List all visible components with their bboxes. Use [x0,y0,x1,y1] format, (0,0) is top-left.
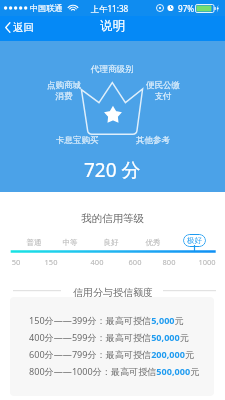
staticText: 150 [31,257,71,267]
staticText: 优秀 [133,238,173,247]
staticText: 代理商级别 [91,64,134,75]
staticText: 便民公缴 支付 [146,80,180,102]
staticText: 1000 [187,257,225,267]
staticText: 信用分与授信额度 [73,286,153,299]
staticText: 极好 [187,236,202,245]
staticText: 400 [77,257,117,267]
staticText: 97% [178,3,195,14]
staticText: 普通 [14,238,54,247]
staticText: 卡息宝购买 [56,135,99,146]
staticText: 其他参考 [136,135,170,146]
staticText: 中国联通 [30,3,63,13]
staticText: 600 [115,257,155,267]
staticText: 良好 [91,238,131,247]
other: Location [156,4,164,12]
button[interactable]: 极好 [183,234,206,247]
staticText: 上午11:38 [91,3,129,14]
staticText: 720 分 [84,157,141,183]
staticText: 说明 [100,18,125,34]
button[interactable]: 返回 [0,16,42,41]
staticText: 50 [0,257,36,267]
staticText: 800分——1000分：最高可授信500,000元 [29,365,200,377]
staticText: 150分——399分：最高可授信5,000元 [29,314,184,326]
staticText: 我的信用等级 [81,212,144,225]
staticText: 600分——799分：最高可授信200,000元 [29,348,195,360]
staticText: 400分——599分：最高可授信50,000元 [29,331,189,343]
staticText: 800 [149,257,189,267]
staticText: 返回 [13,21,34,34]
other: Alarm [167,4,174,12]
staticText: 中等 [50,238,90,247]
staticText: 点购商城 消费 [47,80,81,102]
